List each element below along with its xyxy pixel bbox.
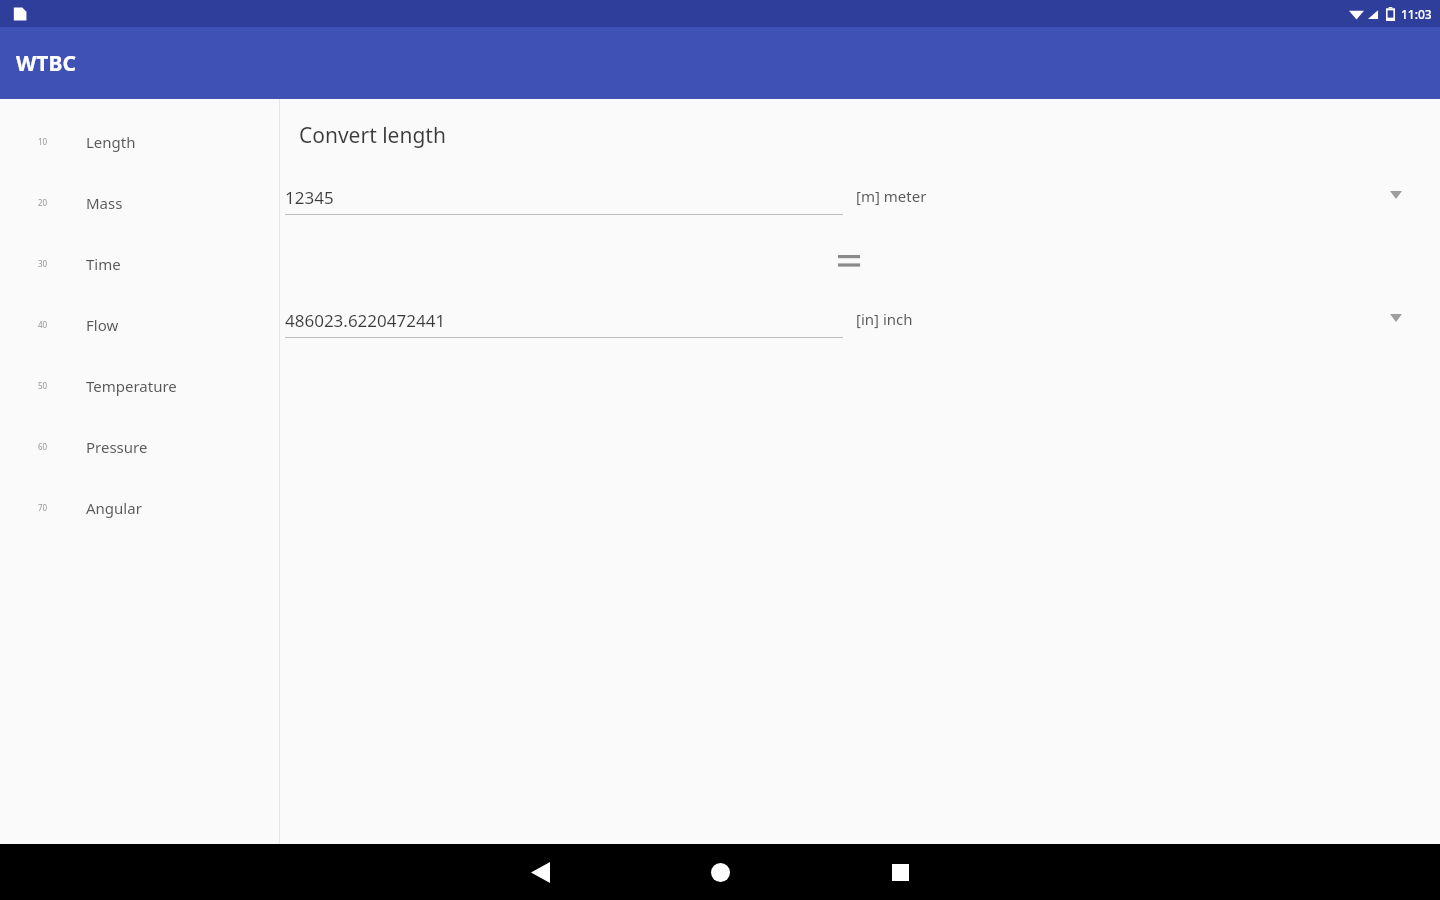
button[interactable]: 20 [0, 172, 279, 233]
staticText: 12345 [285, 186, 334, 209]
staticText: Mass [86, 193, 123, 213]
button[interactable]: Back [450, 844, 630, 900]
button[interactable]: 50 [0, 355, 279, 416]
staticText: Temperature [86, 376, 177, 396]
staticText: 486023.6220472441 [285, 309, 446, 332]
staticText: Pressure [86, 437, 148, 457]
staticText: 70 [38, 502, 48, 513]
staticText: 30 [38, 258, 48, 269]
staticText: 10 [38, 136, 48, 147]
staticText: 50 [38, 380, 48, 391]
button[interactable]: 70 [0, 477, 279, 538]
button[interactable]: [m] meter [856, 186, 1440, 206]
staticText: [in] inch [856, 309, 913, 329]
button[interactable]: 12345 [285, 186, 843, 215]
staticText: Angular [86, 498, 142, 518]
staticText: 11:03 [1401, 6, 1432, 22]
button[interactable]: [in] inch [856, 309, 1440, 329]
button[interactable]: 10 [0, 111, 279, 172]
staticText: Length [86, 132, 136, 152]
staticText: Flow [86, 315, 119, 335]
staticText: WTBC [16, 49, 76, 78]
button[interactable]: Home [630, 844, 810, 900]
staticText: 20 [38, 197, 48, 208]
staticText: 60 [38, 441, 48, 452]
staticText: Convert length [299, 121, 446, 150]
staticText: 40 [38, 319, 48, 330]
button[interactable]: 60 [0, 416, 279, 477]
other: Select unit [1390, 191, 1402, 199]
other: Select unit [1390, 314, 1402, 322]
staticText: [m] meter [856, 186, 927, 206]
button[interactable]: 40 [0, 294, 279, 355]
button[interactable]: Recent apps [810, 844, 990, 900]
button[interactable]: 30 [0, 233, 279, 294]
staticText: Time [86, 254, 121, 274]
button[interactable]: 486023.6220472441 [285, 309, 843, 338]
